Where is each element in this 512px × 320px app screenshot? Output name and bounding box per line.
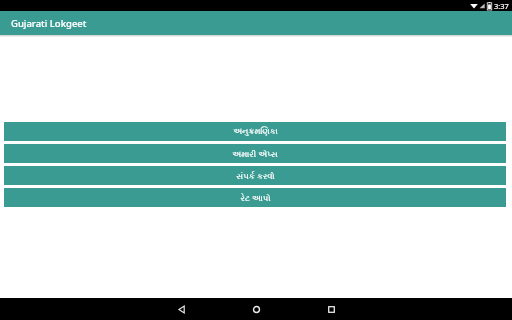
button[interactable]: Home — [233, 298, 279, 320]
button[interactable]: Back — [158, 298, 204, 320]
button[interactable]: સંપર્ક કરવો — [4, 166, 506, 185]
staticText: સંપર્ક કરવો — [236, 170, 275, 182]
staticText: 3:37 — [494, 1, 509, 11]
staticText: રેટ આપો — [240, 192, 271, 204]
staticText: અમારી એપ્સ — [232, 148, 278, 160]
button[interactable]: અમારી એપ્સ — [4, 144, 506, 163]
button[interactable]: રેટ આપો — [4, 188, 506, 207]
button[interactable]: અનુક્રમણિકા — [4, 122, 506, 141]
staticText: Gujarati Lokgeet — [11, 17, 87, 30]
staticText: અનુક્રમણિકા — [233, 127, 278, 136]
button[interactable]: Recent apps — [308, 298, 354, 320]
